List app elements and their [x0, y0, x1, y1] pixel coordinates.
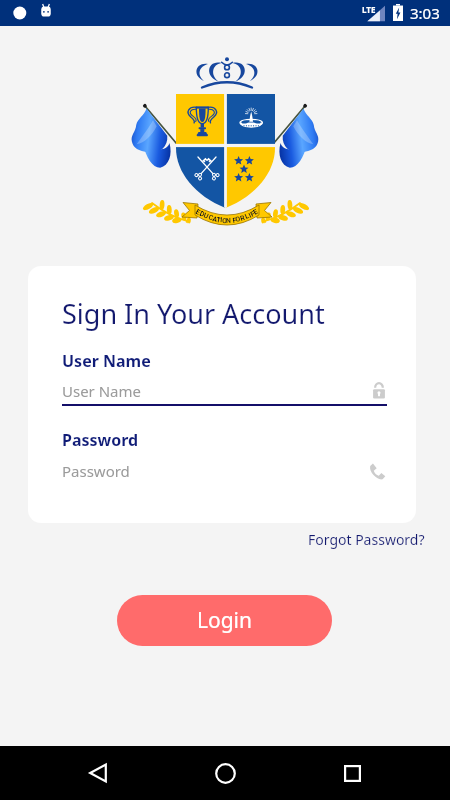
- staticText: Sign In Your Account: [62, 295, 325, 332]
- staticText: 3:03: [410, 3, 440, 23]
- button[interactable]: User Name: [62, 378, 387, 404]
- button[interactable]: Password: [62, 458, 387, 484]
- button[interactable]: Back: [78, 746, 118, 800]
- staticText: User Name: [62, 381, 142, 401]
- button[interactable]: Recent apps: [332, 746, 372, 800]
- staticText: User Name: [62, 350, 151, 372]
- button[interactable]: Login: [117, 595, 332, 646]
- staticText: Login: [197, 606, 253, 635]
- staticText: Password: [62, 429, 139, 451]
- staticText: Forgot Password?: [308, 530, 425, 549]
- button[interactable]: Forgot Password?: [302, 526, 431, 553]
- button[interactable]: Home: [205, 746, 245, 800]
- staticText: Password: [62, 461, 130, 481]
- staticText: LTE: [362, 4, 376, 15]
